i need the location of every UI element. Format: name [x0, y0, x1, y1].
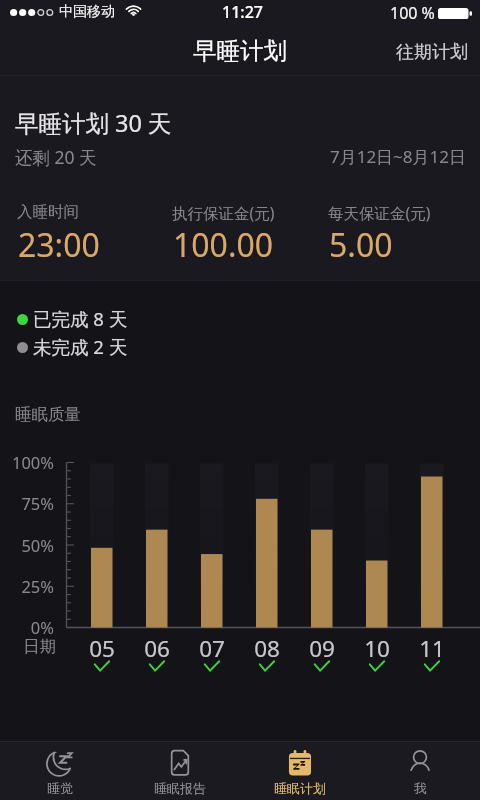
- staticText: 75%: [0, 492, 54, 514]
- staticText: 已完成 8 天: [33, 306, 128, 331]
- staticText: 未完成 2 天: [33, 334, 128, 359]
- staticText: 还剩 20 天: [15, 145, 97, 169]
- staticText: 0%: [0, 616, 54, 638]
- staticText: 往期计划: [396, 41, 468, 64]
- staticText: 睡觉: [47, 780, 73, 796]
- button[interactable]: 睡觉: [0, 742, 120, 800]
- staticText: 5.00: [329, 223, 393, 267]
- staticText: 中国移动: [59, 3, 115, 21]
- staticText: 11: [407, 633, 457, 664]
- staticText: 我: [414, 780, 427, 796]
- staticText: 入睡时间: [17, 202, 79, 222]
- staticText: 早睡计划: [193, 36, 287, 66]
- button[interactable]: 往期计划: [384, 29, 480, 76]
- staticText: 11:27: [222, 1, 263, 23]
- staticText: 日期: [23, 636, 56, 657]
- staticText: 23:00: [18, 223, 100, 267]
- staticText: 06: [132, 633, 182, 664]
- staticText: 50%: [0, 534, 54, 556]
- staticText: 100 %: [390, 2, 435, 24]
- button[interactable]: 睡眠计划: [240, 742, 360, 800]
- staticText: 09: [297, 633, 347, 664]
- staticText: 08: [242, 633, 292, 664]
- staticText: 07: [187, 633, 237, 664]
- staticText: 每天保证金(元): [328, 202, 431, 223]
- staticText: 05: [77, 633, 127, 664]
- staticText: 执行保证金(元): [172, 202, 275, 223]
- staticText: 25%: [0, 575, 54, 597]
- staticText: 7月12日~8月12日: [0, 145, 466, 168]
- staticText: 早睡计划 30 天: [15, 107, 172, 139]
- staticText: 睡眠报告: [154, 780, 206, 796]
- staticText: 睡眠计划: [274, 780, 326, 796]
- staticText: 睡眠质量: [15, 404, 81, 425]
- staticText: 10: [352, 633, 402, 664]
- staticText: 100%: [0, 451, 54, 473]
- staticText: 100.00: [173, 223, 274, 267]
- button[interactable]: 睡眠报告: [120, 742, 240, 800]
- button[interactable]: 我: [360, 742, 480, 800]
